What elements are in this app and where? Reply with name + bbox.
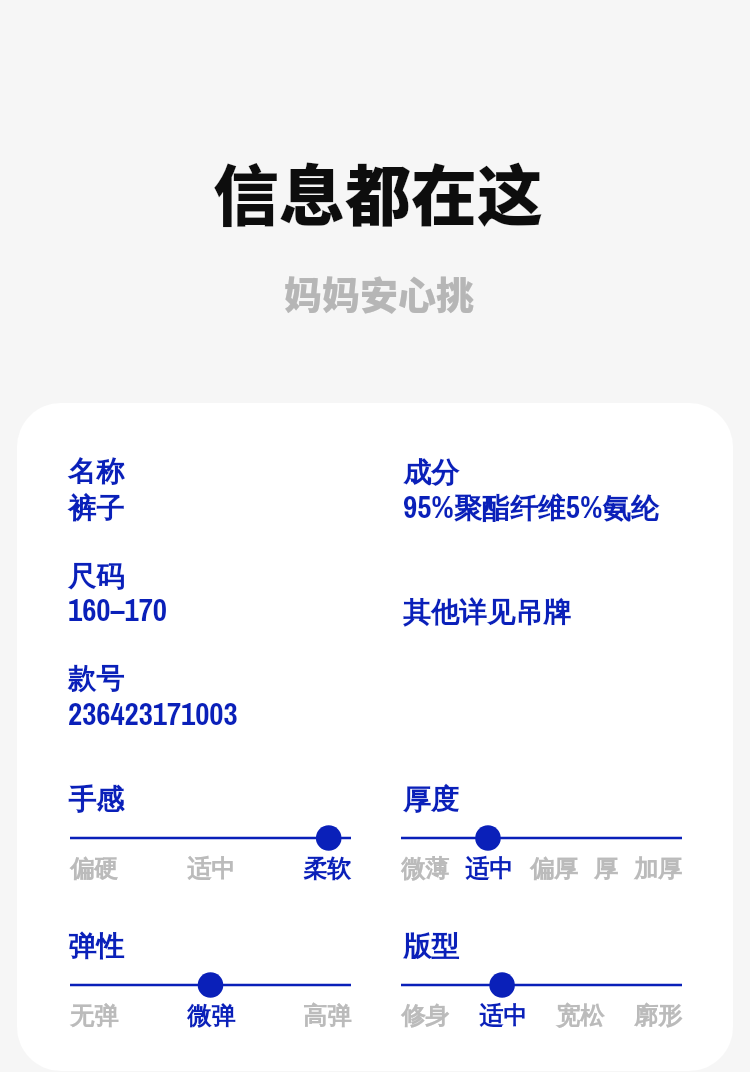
button[interactable]: 高弹 [303, 1001, 351, 1031]
staticText: 成分 [403, 455, 459, 490]
staticText: 款号 [68, 661, 124, 696]
staticText: 妈妈安心挑 [4, 265, 750, 320]
staticText: 236423171003 [68, 693, 238, 735]
button[interactable]: 名称 [17, 403, 733, 1071]
staticText: 名称 [68, 454, 124, 489]
staticText: 版型 [403, 929, 459, 964]
button[interactable]: 无弹 [70, 1001, 118, 1031]
staticText: 95%聚酯纤维5%氨纶 [403, 486, 659, 528]
button[interactable]: 微弹 [187, 1001, 235, 1031]
button[interactable]: 适中 [465, 854, 513, 884]
button[interactable]: 厚 [594, 854, 618, 884]
button[interactable]: 修身 [401, 1001, 449, 1031]
button[interactable]: 柔软 [303, 854, 351, 884]
button[interactable]: 适中 [187, 854, 235, 884]
button[interactable]: 加厚 [634, 854, 682, 884]
button[interactable]: 偏硬 [70, 854, 118, 884]
staticText: 信息都在这 [3, 143, 750, 239]
button[interactable]: 弹性: 微弹 [70, 971, 351, 999]
button[interactable]: 偏厚 [530, 854, 578, 884]
staticText: 弹性 [68, 929, 124, 964]
button[interactable]: 微薄 [401, 854, 449, 884]
button[interactable]: 版型: 适中 [401, 971, 682, 999]
staticText: 尺码 [68, 559, 124, 594]
staticText: 裤子 [68, 491, 124, 526]
staticText: 厚度 [403, 782, 459, 817]
button[interactable]: 手感: 柔软 [70, 824, 351, 852]
staticText: 其他详见吊牌 [403, 595, 571, 630]
staticText: 手感 [68, 782, 124, 817]
button[interactable]: 厚度: 适中 [401, 824, 682, 852]
button[interactable]: 宽松 [556, 1001, 604, 1031]
button[interactable]: 适中 [479, 1001, 527, 1031]
staticText: 160–170 [68, 589, 167, 631]
button[interactable]: 廓形 [634, 1001, 682, 1031]
